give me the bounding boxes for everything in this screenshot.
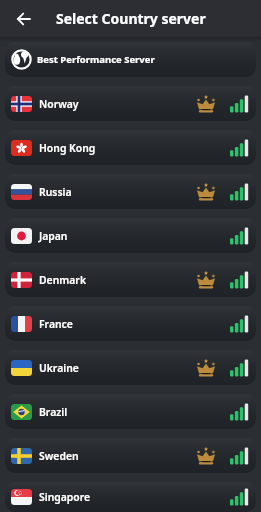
button[interactable]: Brazil: [5, 394, 256, 429]
button[interactable]: Norway: [5, 86, 256, 121]
button[interactable]: Ukraine: [5, 350, 256, 385]
staticText: Sweden: [39, 449, 79, 463]
staticText: Hong Kong: [39, 141, 96, 155]
button[interactable]: Best Performance Server: [5, 42, 256, 77]
button[interactable]: Denmark: [5, 262, 256, 297]
button[interactable]: Russia: [5, 174, 256, 209]
staticText: Ukraine: [39, 361, 79, 375]
button[interactable]: Japan: [5, 218, 256, 253]
staticText: Brazil: [39, 405, 68, 419]
button[interactable]: Sweden: [5, 438, 256, 473]
staticText: Russia: [39, 185, 72, 199]
button[interactable]: France: [5, 306, 256, 341]
button[interactable]: Hong Kong: [5, 130, 256, 165]
staticText: Norway: [39, 97, 79, 111]
staticText: Singapore: [39, 490, 91, 504]
staticText: Denmark: [39, 273, 86, 287]
button[interactable]: Singapore: [5, 482, 256, 512]
button[interactable]: [10, 6, 36, 32]
staticText: Best Performance Server: [37, 53, 155, 66]
staticText: France: [39, 317, 73, 331]
staticText: Japan: [39, 229, 68, 243]
staticText: Select Country server: [56, 9, 206, 28]
